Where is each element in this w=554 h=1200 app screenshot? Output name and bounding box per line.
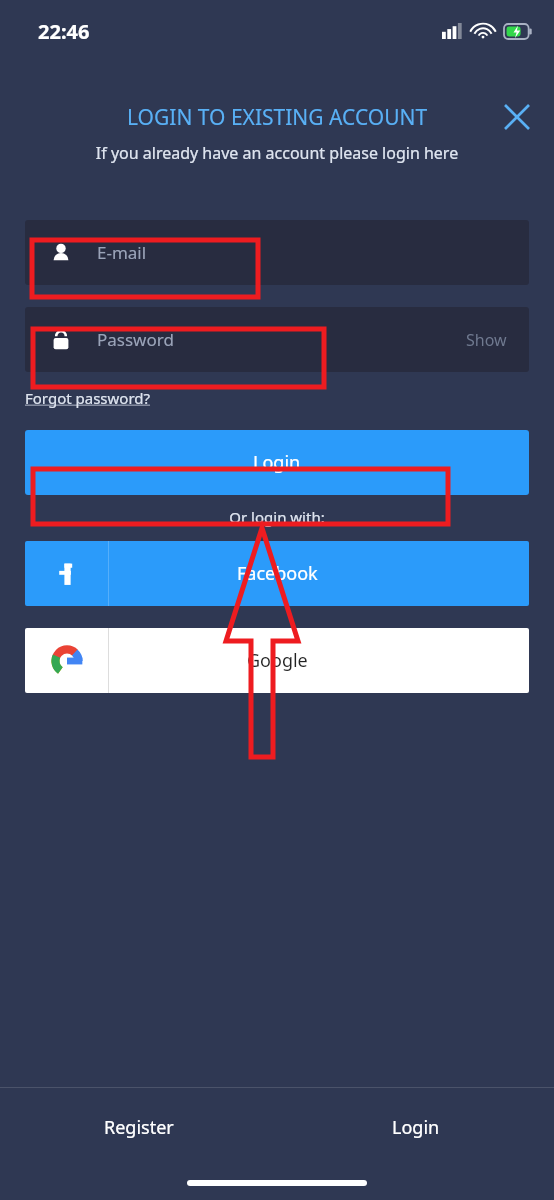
button[interactable]: Login (25, 430, 529, 495)
staticText: Or login with: (0, 507, 554, 527)
button[interactable]: Password (25, 307, 529, 372)
button[interactable]: Facebook (25, 541, 529, 606)
staticText: Google (247, 648, 308, 673)
staticText: E-mail (97, 241, 147, 264)
staticText: Facebook (237, 561, 318, 586)
button[interactable]: Register (0, 1088, 277, 1166)
button[interactable]: Close (496, 98, 538, 136)
staticText: If you already have an account please lo… (0, 142, 554, 164)
button[interactable]: Login (277, 1088, 554, 1166)
staticText: Password (97, 328, 174, 351)
staticText: LOGIN TO EXISTING ACCOUNT (127, 103, 428, 132)
staticText: Login (253, 450, 301, 475)
button[interactable]: E-mail (25, 220, 529, 285)
staticText: 22:46 (38, 18, 90, 45)
staticText: Forgot password? (25, 388, 151, 408)
button[interactable]: Google (25, 628, 529, 693)
staticText: Login (392, 1115, 440, 1140)
button[interactable]: Forgot password? (25, 388, 151, 408)
staticText: Show (466, 329, 507, 351)
button[interactable]: Show (460, 323, 513, 357)
staticText: Register (104, 1115, 174, 1140)
